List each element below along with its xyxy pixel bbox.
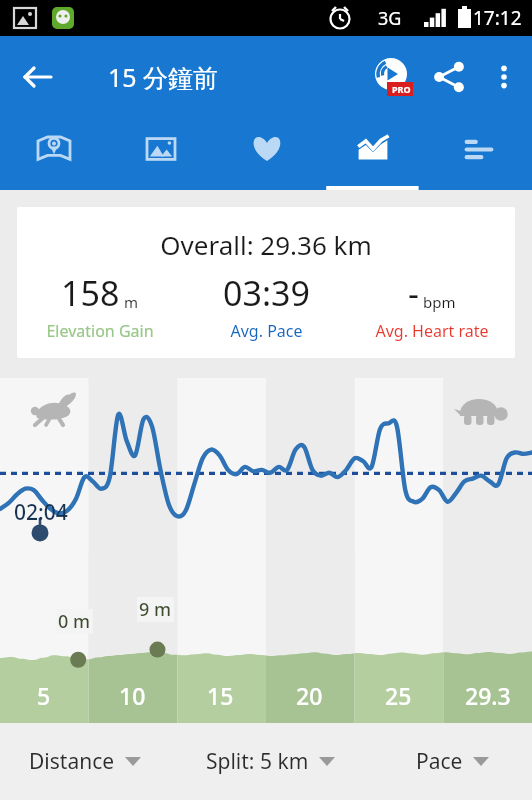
staticText: 158 [61, 270, 120, 316]
button[interactable]: Splits [426, 118, 532, 190]
button[interactable]: Pace [372, 723, 532, 800]
staticText: Split: 5 km [206, 747, 309, 776]
staticText: 5 [37, 680, 51, 711]
button[interactable]: Photos [107, 118, 214, 190]
staticText: bpm [423, 292, 456, 312]
staticText: PRO [392, 83, 411, 95]
staticText: 17:12 [473, 5, 522, 31]
staticText: Pace [416, 747, 463, 776]
button[interactable]: Distance [0, 723, 169, 800]
staticText: Elevation Gain [46, 320, 154, 342]
button[interactable]: Map [0, 118, 107, 190]
staticText: Distance [29, 747, 115, 776]
staticText: Avg. Pace [230, 320, 303, 342]
staticText: - [408, 270, 419, 316]
staticText: 3G [378, 6, 402, 31]
staticText: 29.3 [465, 680, 511, 711]
staticText: 0 m [58, 609, 91, 634]
staticText: 03:39 [223, 270, 310, 316]
button[interactable]: Heart rate [214, 118, 320, 190]
staticText: 25 [385, 680, 412, 711]
button[interactable]: Back [10, 49, 66, 105]
button[interactable]: Split: 5 km [169, 723, 372, 800]
button[interactable]: Create video PRO [362, 48, 420, 106]
button[interactable]: Overall: 29.36 km [17, 207, 515, 358]
staticText: 10 [119, 680, 146, 711]
staticText: m [124, 292, 139, 312]
staticText: Overall: 29.36 km [17, 227, 515, 262]
button[interactable]: More options [478, 51, 530, 103]
staticText: 20 [296, 680, 323, 711]
button[interactable]: Graphs [320, 118, 426, 190]
staticText: 9 m [139, 597, 172, 622]
staticText: Avg. Heart rate [375, 320, 489, 342]
staticText: 02:04 [14, 498, 68, 527]
button[interactable]: Share [420, 48, 478, 106]
staticText: 15 [207, 680, 234, 711]
staticText: 15 分鐘前 [108, 60, 219, 94]
